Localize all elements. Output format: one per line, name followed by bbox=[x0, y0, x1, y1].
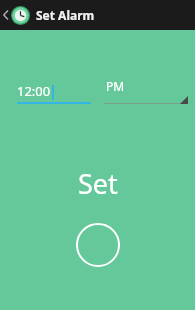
staticText: 12:00 bbox=[17, 82, 51, 100]
button[interactable]: Navigate up bbox=[0, 0, 95, 30]
staticText: PM bbox=[106, 78, 125, 94]
staticText: Set Alarm bbox=[36, 7, 95, 23]
button[interactable]: PM bbox=[104, 78, 188, 104]
button[interactable]: Set alarm bbox=[75, 222, 121, 268]
other: Navigate up bbox=[2, 8, 10, 22]
button[interactable]: 12:00 bbox=[17, 82, 91, 104]
staticText: Set bbox=[78, 165, 118, 202]
